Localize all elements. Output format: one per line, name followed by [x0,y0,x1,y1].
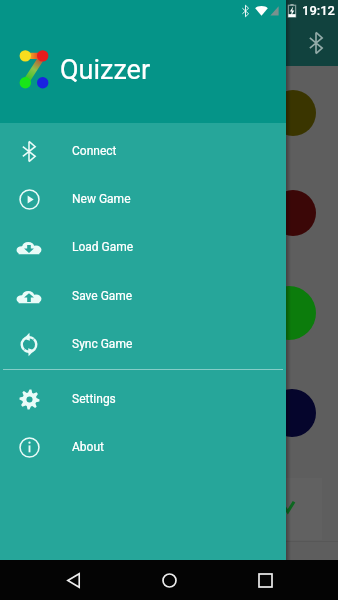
button[interactable]: Connect [0,127,286,175]
button[interactable]: Bluetooth [300,27,332,59]
staticText: About [72,440,104,454]
button[interactable]: Save Game [0,272,286,320]
button[interactable]: About [0,423,286,471]
button[interactable]: Recents [242,560,288,600]
staticText: Save Game [72,289,133,303]
staticText: Load Game [72,240,134,254]
button[interactable]: Back [50,560,96,600]
staticText: Settings [72,392,116,406]
button[interactable]: New Game [0,175,286,223]
staticText: Sync Game [72,337,133,351]
button[interactable]: Sync Game [0,320,286,368]
staticText: Quizzer [60,54,151,86]
button[interactable]: Home [146,560,192,600]
staticText: New Game [72,192,131,206]
staticText: 19:12 [302,3,335,18]
button[interactable]: Load Game [0,223,286,271]
button[interactable]: Settings [0,375,286,423]
staticText: Connect [72,144,117,158]
